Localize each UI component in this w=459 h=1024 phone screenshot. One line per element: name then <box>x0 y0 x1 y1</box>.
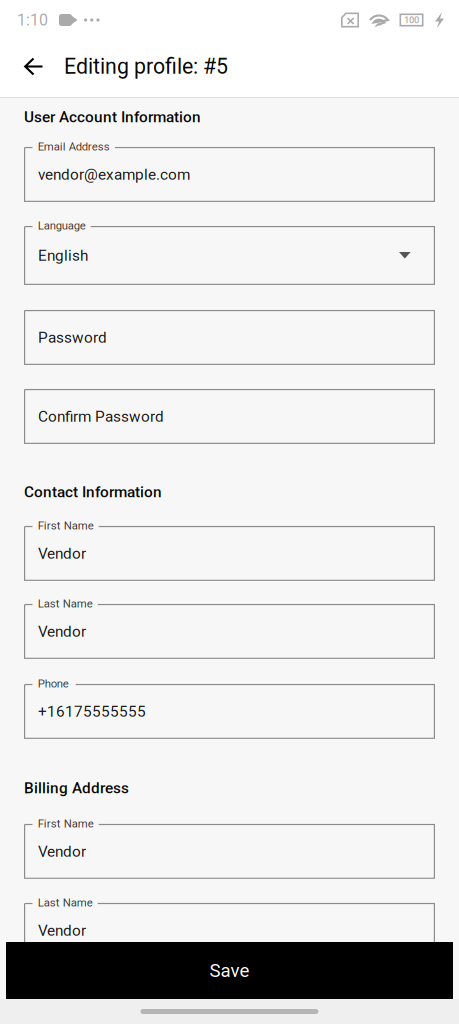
button[interactable]: Confirm Password <box>24 389 435 444</box>
staticText: Email Address <box>38 140 110 153</box>
button[interactable]: Vendor <box>24 604 435 659</box>
button[interactable]: Vendor <box>24 824 435 879</box>
button[interactable]: +16175555555 <box>24 684 435 739</box>
staticText: Last Name <box>38 597 93 610</box>
staticText: 100 <box>404 14 419 25</box>
staticText: Confirm Password <box>38 407 164 425</box>
staticText: +16175555555 <box>38 702 146 720</box>
button[interactable]: Vendor <box>24 526 435 581</box>
staticText: Vendor <box>38 842 86 860</box>
button[interactable]: vendor@example.com <box>24 147 435 202</box>
staticText: Vendor <box>38 921 86 939</box>
button[interactable]: Password <box>24 310 435 365</box>
staticText: Vendor <box>38 544 86 562</box>
staticText: User Account Information <box>24 108 201 126</box>
staticText: English <box>38 246 88 264</box>
staticText: Phone <box>38 677 69 690</box>
staticText: Editing profile: #5 <box>64 54 228 79</box>
button[interactable]: Vendor <box>24 903 435 958</box>
staticText: Save <box>209 960 249 981</box>
staticText: First Name <box>38 817 94 830</box>
staticText: 1:10 <box>17 11 48 29</box>
button[interactable]: Save <box>6 942 453 999</box>
staticText: First Name <box>38 519 94 532</box>
button[interactable]: Back <box>0 40 64 97</box>
staticText: Language <box>38 219 86 232</box>
button[interactable]: English <box>24 226 435 285</box>
staticText: Last Name <box>38 896 93 909</box>
staticText: Password <box>38 328 107 346</box>
staticText: Contact Information <box>24 483 162 501</box>
staticText: Vendor <box>38 622 86 640</box>
staticText: vendor@example.com <box>38 165 190 183</box>
staticText: Billing Address <box>24 779 129 797</box>
